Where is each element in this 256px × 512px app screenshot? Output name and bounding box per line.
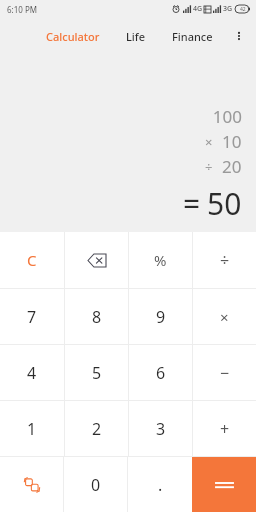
button[interactable]: Calculator (42, 25, 104, 48)
button[interactable]: 2 (65, 401, 128, 456)
button[interactable]: − (193, 345, 256, 400)
button[interactable]: % (129, 232, 192, 288)
staticText: 6 (156, 362, 166, 384)
staticText: 4G (193, 4, 203, 14)
staticText: 6:10 PM (7, 4, 38, 15)
staticText: 7 (27, 306, 37, 328)
button[interactable]: Backspace (65, 232, 128, 288)
staticText: % (154, 250, 167, 270)
button[interactable]: Finance (168, 25, 217, 48)
button[interactable]: 5 (65, 345, 128, 400)
button[interactable]: ÷ (193, 232, 256, 288)
staticText: 42 (240, 6, 246, 13)
staticText: . (158, 474, 163, 496)
button[interactable]: 9 (129, 289, 192, 344)
button[interactable]: . (128, 457, 192, 512)
staticText: Calculator (46, 29, 100, 44)
button[interactable]: Unit converter (0, 457, 63, 512)
button[interactable]: 3 (129, 401, 192, 456)
button[interactable]: 6 (129, 345, 192, 400)
staticText: 0 (91, 474, 101, 496)
button[interactable]: 8 (65, 289, 128, 344)
button[interactable]: 0 (64, 457, 127, 512)
button[interactable]: 4 (0, 345, 64, 400)
button[interactable]: × (193, 289, 256, 344)
button[interactable]: More options (224, 21, 254, 51)
staticText: 3G (223, 4, 233, 14)
staticText: 100 (212, 105, 242, 128)
button[interactable]: Equals (192, 457, 256, 512)
staticText: Life (126, 29, 146, 44)
staticText: 9 (156, 306, 166, 328)
button[interactable]: C (0, 232, 64, 288)
staticText: 50 (207, 183, 242, 224)
staticText: ÷ (220, 249, 230, 271)
staticText: 1 (27, 418, 37, 440)
staticText: − (220, 362, 230, 384)
staticText: × (220, 307, 229, 327)
staticText: × (205, 133, 213, 151)
button[interactable]: 1 (0, 401, 64, 456)
staticText: 8 (92, 306, 102, 328)
staticText: = (183, 183, 201, 224)
staticText: 20 (222, 155, 242, 178)
staticText: 5 (92, 362, 102, 384)
staticText: C (27, 250, 37, 270)
staticText: 4 (27, 362, 37, 384)
button[interactable]: 7 (0, 289, 64, 344)
button[interactable]: Life (122, 25, 150, 48)
staticText: 3 (156, 418, 166, 440)
staticText: + (220, 418, 230, 440)
staticText: 2 (92, 418, 102, 440)
staticText: Finance (172, 29, 213, 44)
button[interactable]: + (193, 401, 256, 456)
staticText: 10 (222, 130, 242, 153)
staticText: ÷ (205, 158, 213, 176)
